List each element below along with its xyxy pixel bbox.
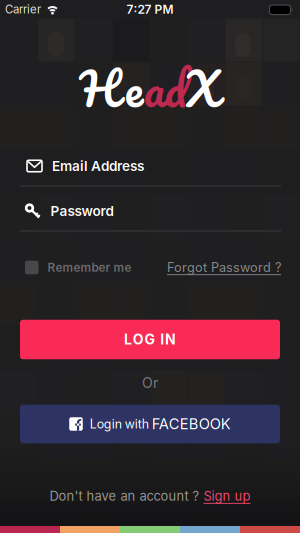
- staticText: Remember me: [47, 260, 131, 275]
- staticText: Or: [142, 374, 158, 391]
- button[interactable]: LOG IN: [20, 320, 280, 359]
- staticText: Login with: [90, 416, 152, 431]
- staticText: FACEBOOK: [152, 415, 231, 433]
- button[interactable]: Sign up: [203, 488, 250, 504]
- button[interactable]: Password: [20, 192, 281, 234]
- staticText: LOG IN: [124, 331, 176, 348]
- staticText: Email Address: [52, 158, 144, 174]
- staticText: ad: [143, 48, 186, 128]
- staticText: He: [79, 48, 143, 128]
- button[interactable]: Forgot Password ?: [167, 260, 281, 275]
- staticText: 7:27 PM: [126, 2, 173, 17]
- staticText: Carrier: [5, 3, 41, 16]
- staticText: Don't have an account ?: [49, 488, 199, 504]
- button[interactable]: Login with: [20, 405, 280, 443]
- staticText: Sign up: [203, 488, 250, 504]
- staticText: X: [186, 48, 218, 128]
- button[interactable]: Remember me: [25, 260, 131, 275]
- staticText: Password: [50, 203, 113, 219]
- staticText: Forgot Password ?: [167, 260, 281, 275]
- button[interactable]: Email Address: [20, 147, 281, 189]
